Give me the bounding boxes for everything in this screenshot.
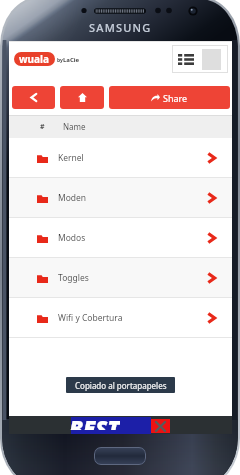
button[interactable]: wuala [14, 52, 55, 66]
button[interactable]: Close ad [151, 419, 170, 433]
staticText: BEST [69, 413, 120, 430]
staticText: Share [163, 92, 188, 104]
staticText: Copiado al portapapeles [75, 380, 167, 391]
staticText: Wifi y Cobertura [58, 312, 123, 324]
staticText: LaCie [63, 56, 80, 64]
button[interactable]: Home [94, 447, 146, 465]
button[interactable]: Back [12, 86, 55, 109]
staticText: Toggles [58, 272, 89, 284]
button[interactable]: BEST [71, 417, 151, 434]
button[interactable]: Toggles [9, 258, 232, 298]
staticText: by [57, 57, 65, 64]
button[interactable]: List view [172, 46, 200, 72]
staticText: # [40, 122, 45, 132]
button[interactable]: Home folder [60, 86, 104, 109]
button[interactable]: Kernel [9, 138, 232, 178]
staticText: Modos [58, 232, 86, 244]
button[interactable]: Modos [9, 218, 232, 258]
staticText: wuala [19, 52, 50, 66]
staticText: Name [63, 121, 86, 132]
staticText: Moden [58, 192, 87, 204]
staticText: SAMSUNG [89, 20, 152, 35]
button[interactable]: Moden [9, 178, 232, 218]
button[interactable]: Share [109, 86, 230, 109]
button[interactable]: Wifi y Cobertura [9, 298, 232, 338]
staticText: Kernel [58, 152, 84, 164]
